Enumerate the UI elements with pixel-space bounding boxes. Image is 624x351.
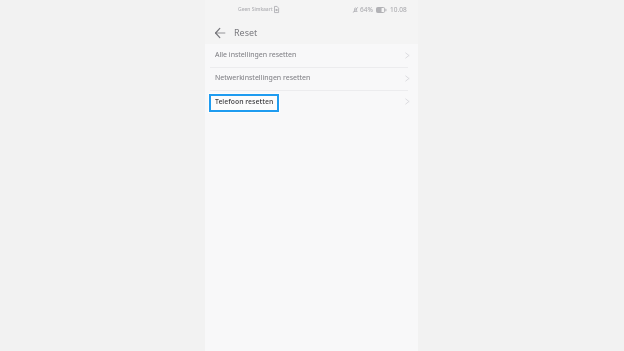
button[interactable]: Netwerkinstellingen resetten — [205, 67, 418, 90]
button[interactable]: Telefoon resetten — [205, 90, 418, 113]
staticText: Telefoon resetten — [215, 97, 274, 106]
staticText: 64% — [360, 5, 373, 14]
staticText: Geen Simkaart — [238, 6, 273, 13]
staticText: Reset — [234, 26, 258, 38]
button[interactable]: Alle instellingen resetten — [205, 44, 418, 67]
staticText: Netwerkinstellingen resetten — [215, 73, 311, 83]
staticText: 10.08 — [390, 5, 407, 14]
button[interactable]: Back — [210, 23, 229, 42]
staticText: Alle instellingen resetten — [215, 50, 297, 60]
